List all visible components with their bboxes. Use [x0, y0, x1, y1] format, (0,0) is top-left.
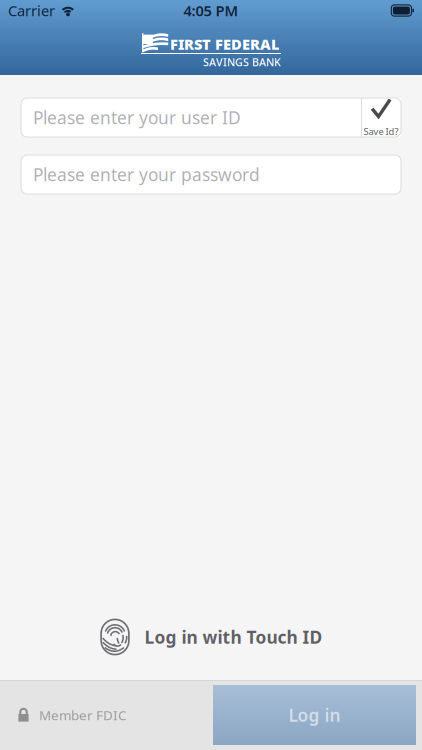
staticText: Log in [288, 703, 340, 726]
staticText: FIRST FEDERAL [170, 34, 280, 54]
staticText: Log in with Touch ID [144, 625, 322, 648]
button[interactable]: Log in [213, 685, 416, 745]
staticText: SAVINGS BANK [203, 55, 281, 69]
staticText: Carrier [8, 1, 55, 20]
staticText: Please enter your password [33, 163, 260, 186]
button[interactable]: Save Id? [361, 98, 401, 137]
staticText: Member FDIC [39, 706, 126, 724]
staticText: Save Id? [363, 125, 398, 138]
staticText: 4:05 PM [183, 1, 238, 20]
button[interactable]: Log in with Touch ID [99, 618, 322, 656]
staticText: Please enter your user ID [33, 106, 241, 129]
